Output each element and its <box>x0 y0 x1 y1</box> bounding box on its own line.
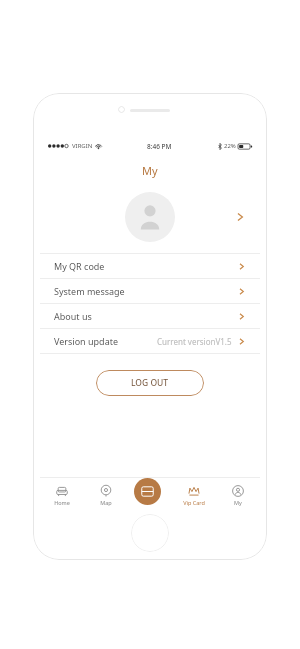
staticText: System message <box>54 285 125 297</box>
button[interactable]: Home button <box>131 514 169 552</box>
button[interactable]: Version update <box>40 329 260 353</box>
staticText: 8:46 PM <box>147 142 172 151</box>
button[interactable]: Card <box>134 478 161 505</box>
staticText: My QR code <box>54 260 105 272</box>
staticText: My <box>234 499 242 506</box>
staticText: Vip Card <box>183 499 205 506</box>
staticText: 22% <box>224 142 236 150</box>
button[interactable]: About us <box>40 304 260 328</box>
button[interactable]: My QR code <box>40 254 260 278</box>
button[interactable] <box>40 180 260 253</box>
staticText: Current versionV1.5 <box>157 336 232 347</box>
button[interactable]: My <box>216 477 260 513</box>
button[interactable]: LOG OUT <box>96 370 204 396</box>
button[interactable]: Vip Card <box>172 477 216 513</box>
staticText: My <box>142 163 158 178</box>
staticText: Home <box>54 499 70 506</box>
staticText: About us <box>54 310 92 322</box>
staticText: Version update <box>54 335 118 347</box>
button[interactable]: Home <box>40 477 84 513</box>
staticText: Map <box>100 499 112 506</box>
staticText: LOG OUT <box>131 377 169 389</box>
button[interactable]: Map <box>84 477 128 513</box>
button[interactable]: System message <box>40 279 260 303</box>
staticText: VIRGIN <box>72 142 93 150</box>
